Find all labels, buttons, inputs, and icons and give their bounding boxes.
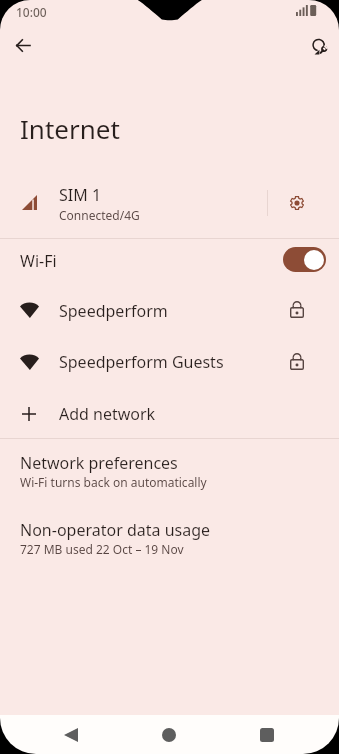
button[interactable]: Speedperform Guests	[0, 337, 339, 388]
staticText: SIM 1	[59, 184, 102, 206]
button[interactable]: Recent apps	[244, 715, 290, 754]
staticText: Connected/4G	[59, 207, 140, 223]
staticText: 727 MB used 22 Oct – 19 Nov	[20, 541, 184, 557]
staticText: Speedperform	[59, 300, 168, 322]
staticText: Wi-Fi	[20, 250, 57, 272]
staticText: Add network	[59, 403, 156, 425]
button[interactable]: SIM 1	[0, 176, 339, 232]
staticText: Internet	[20, 111, 120, 146]
button[interactable]: Non-operator data usage	[0, 506, 339, 566]
staticText: Non-operator data usage	[20, 519, 211, 541]
button[interactable]: Navigate up	[4, 27, 41, 64]
button[interactable]: Network preferences	[0, 440, 339, 500]
button[interactable]: Speedperform	[0, 285, 339, 336]
button[interactable]: Wi-Fi	[0, 239, 339, 285]
button[interactable]: Help and feedback	[301, 26, 339, 64]
button[interactable]: Home	[146, 715, 192, 754]
button[interactable]: Back	[48, 715, 94, 754]
staticText: Speedperform Guests	[59, 351, 224, 373]
staticText: 10:00	[16, 4, 47, 20]
button[interactable]: Add network	[0, 388, 339, 439]
staticText: Wi-Fi turns back on automatically	[20, 474, 207, 490]
staticText: Network preferences	[20, 452, 178, 474]
button[interactable]: SIM settings	[278, 184, 316, 222]
